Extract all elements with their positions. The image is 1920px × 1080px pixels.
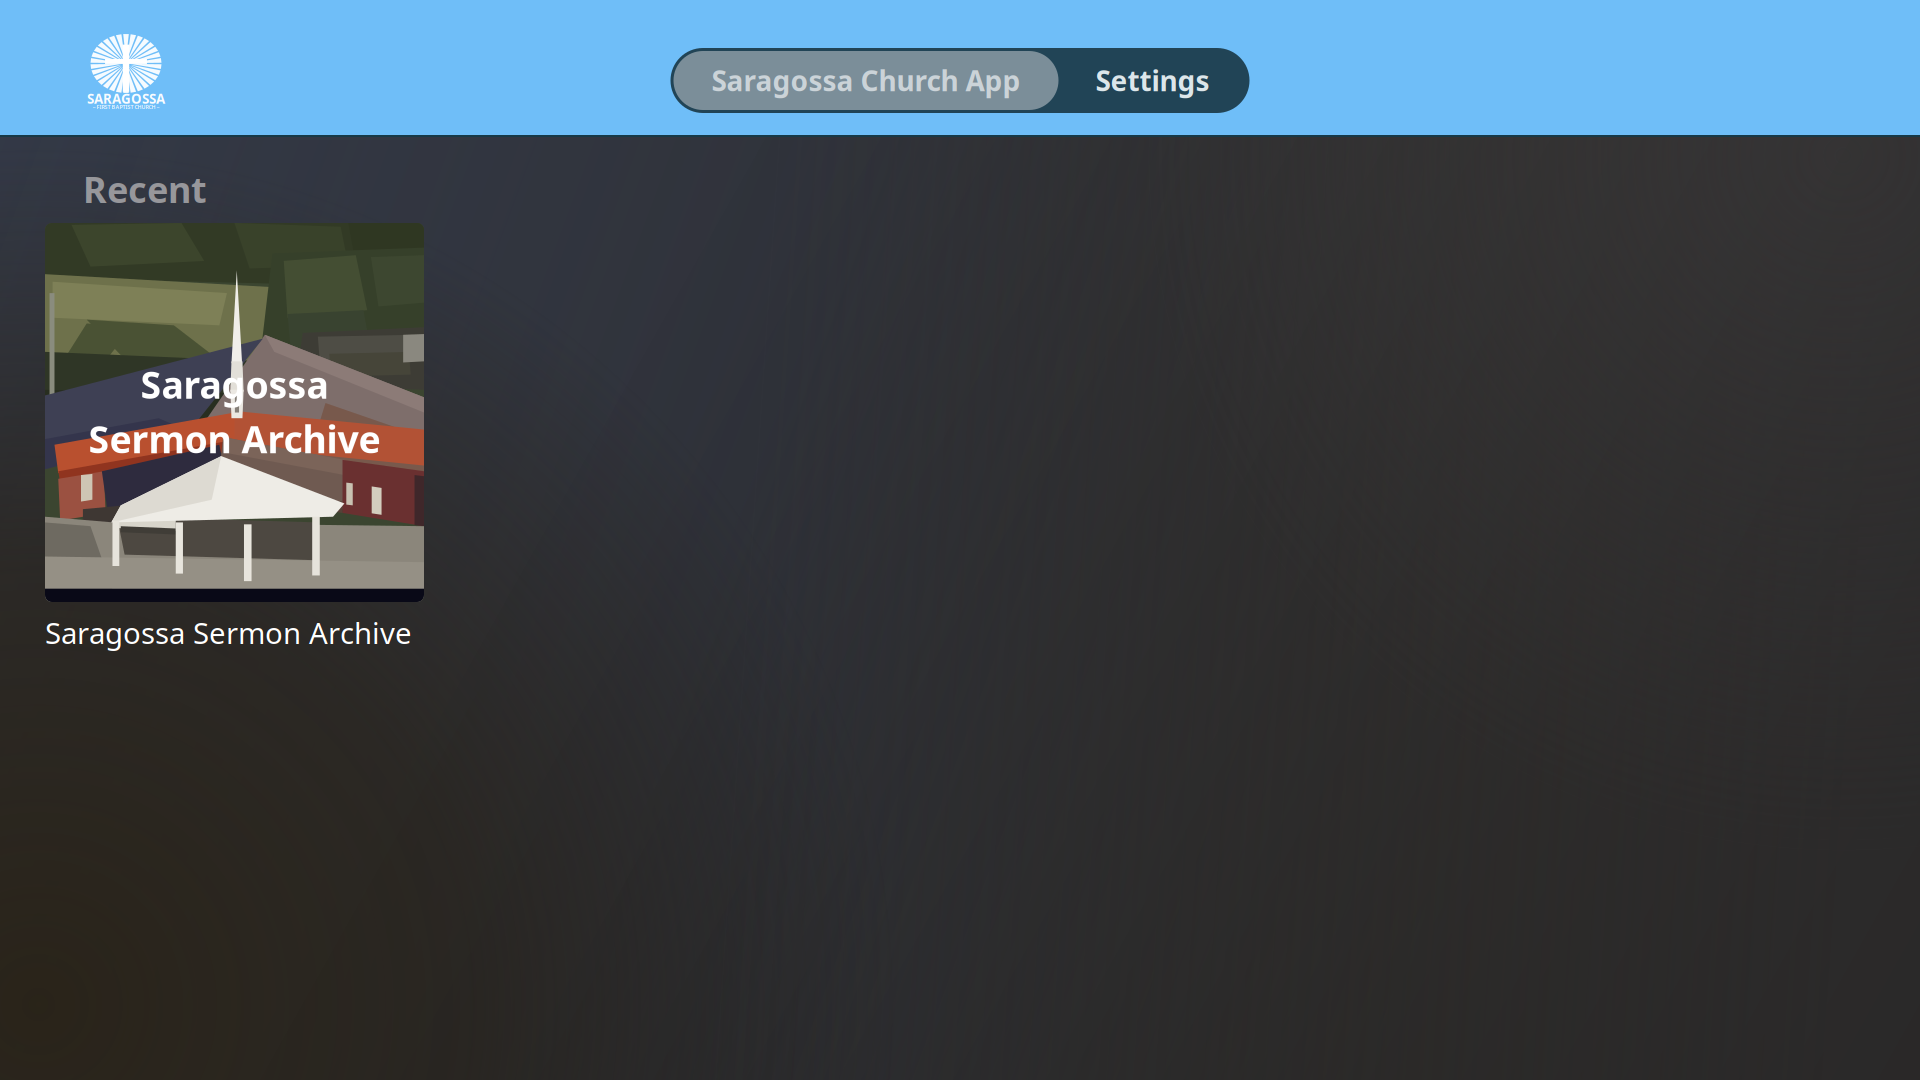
button[interactable]: Saragossa Church App: [673, 51, 1058, 110]
staticText: Saragossa Sermon Archive: [45, 613, 412, 652]
staticText: Saragossa: [140, 359, 328, 409]
staticText: Saragossa Church App: [711, 62, 1020, 99]
staticText: SARAGOSSA: [87, 90, 165, 107]
staticText: Recent: [83, 165, 207, 213]
staticText: Sermon Archive: [88, 414, 380, 464]
button[interactable]: Saragossa: [45, 223, 424, 647]
button[interactable]: Settings: [1058, 51, 1246, 110]
staticText: ~ FIRST BAPTIST CHURCH ~: [92, 103, 159, 111]
staticText: Settings: [1095, 62, 1209, 99]
